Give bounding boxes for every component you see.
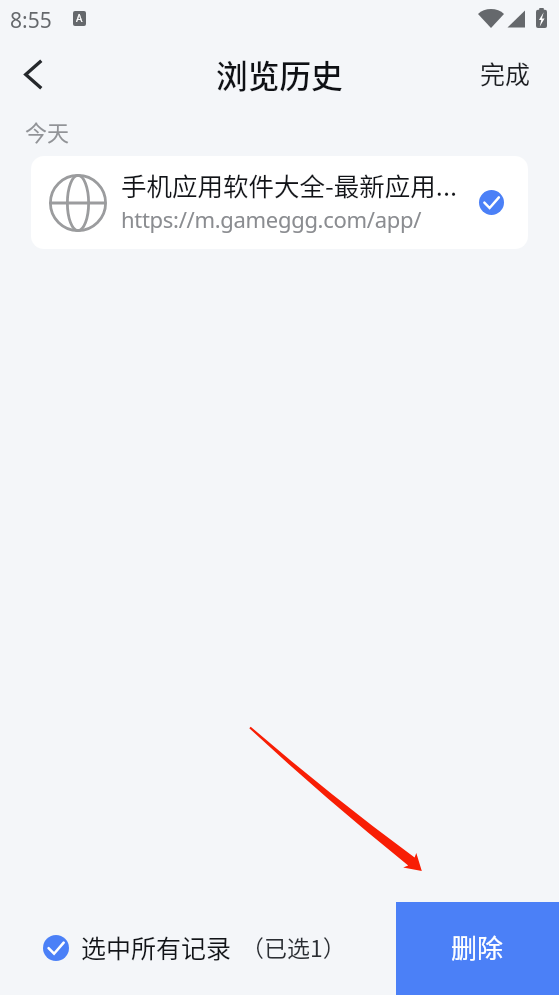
staticText: https://m.gameggg.com/app/	[121, 204, 422, 234]
staticText: 手机应用软件大全-最新应用...	[121, 166, 458, 203]
staticText: 完成	[480, 55, 531, 91]
button[interactable]: 手机应用软件大全-最新应用...	[31, 156, 528, 249]
staticText: A	[76, 11, 83, 25]
staticText: （已选1）	[241, 930, 346, 963]
staticText: 选中所有记录	[81, 929, 232, 965]
button[interactable]: Back	[4, 45, 62, 103]
staticText: 浏览历史	[216, 51, 343, 97]
staticText: 今天	[25, 115, 70, 147]
staticText: 删除	[451, 928, 504, 966]
button[interactable]: 完成	[464, 45, 559, 103]
button[interactable]: 选中所有记录	[0, 902, 396, 995]
staticText: 8:55	[10, 6, 52, 35]
button[interactable]: 删除	[396, 902, 559, 995]
